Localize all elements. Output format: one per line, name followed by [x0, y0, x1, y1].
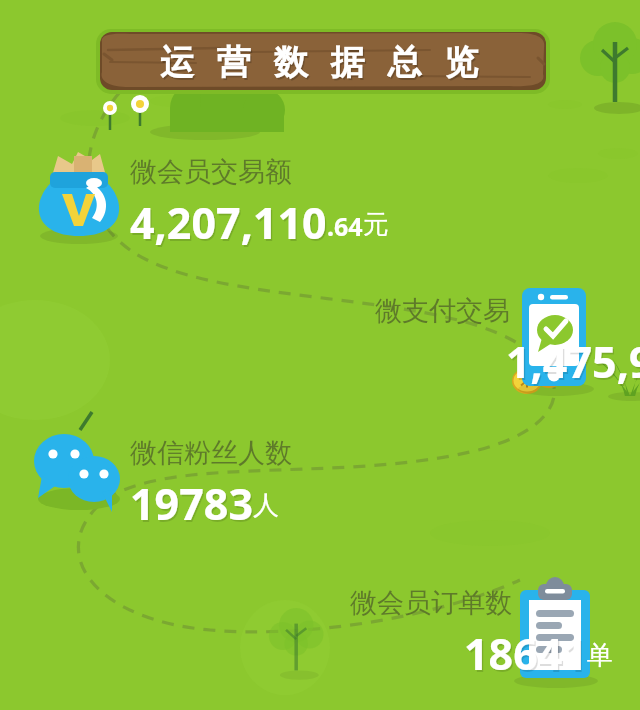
- button[interactable]: 运营数据总览: [0, 0, 640, 710]
